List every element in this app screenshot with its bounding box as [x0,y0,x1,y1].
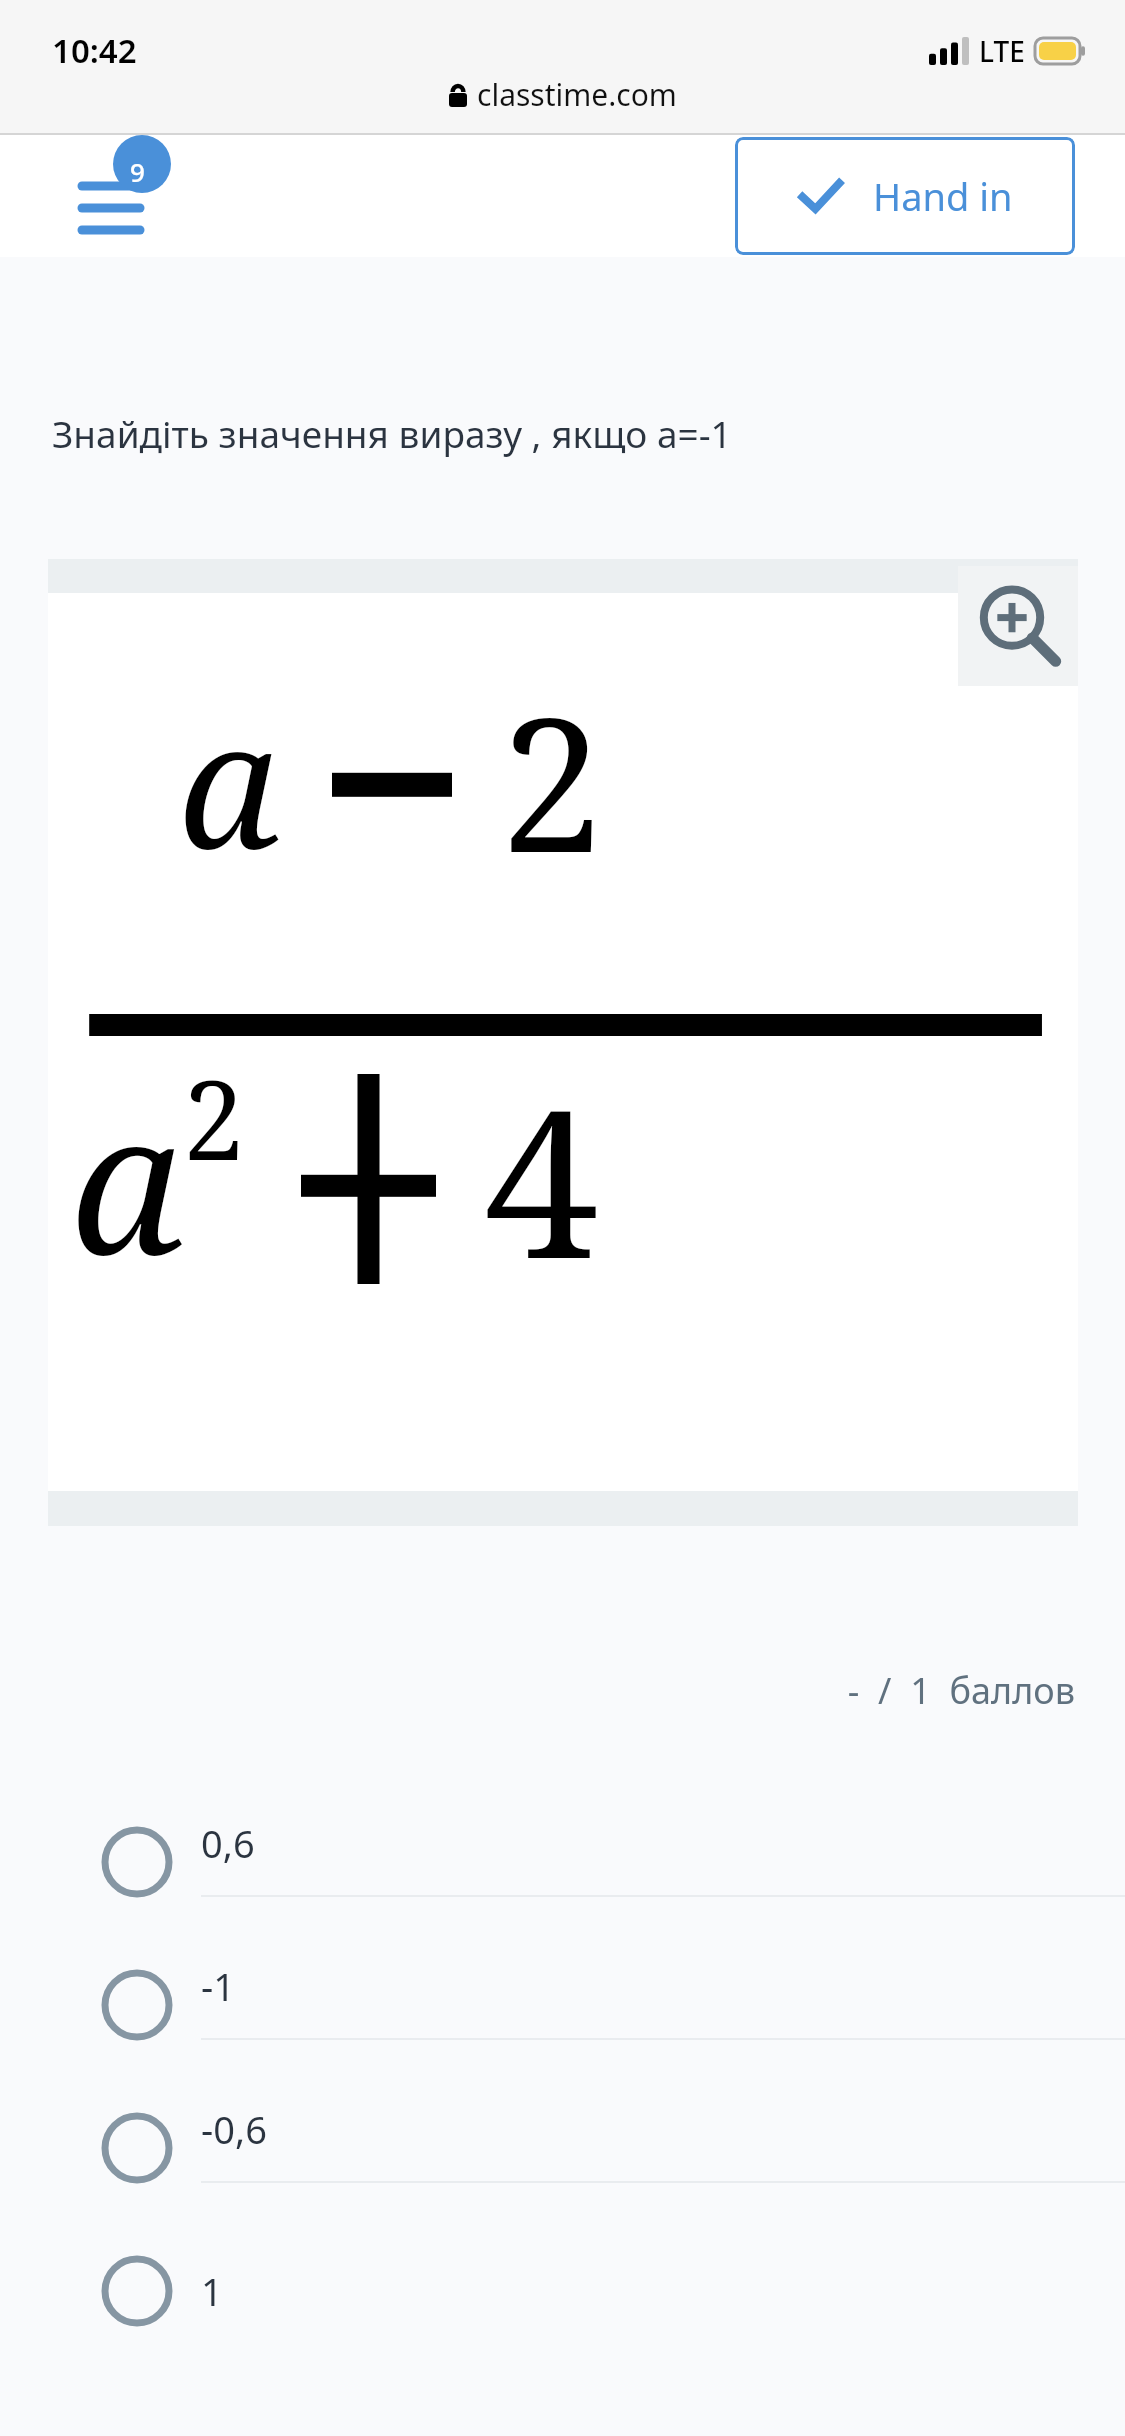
staticText: 4 [484,1039,599,1318]
staticText: a [70,1046,183,1312]
button[interactable]: -1 [0,1933,1125,2076]
staticText: 2 [183,1042,245,1192]
staticText: Знайдіть значення виразу , якщо а=-1 [52,408,732,458]
staticText: 9 [130,154,145,189]
button[interactable]: Zoom image [958,566,1078,686]
button[interactable]: -0,6 [0,2076,1125,2219]
button[interactable]: Menu, 9 questions [52,146,172,246]
staticText: classtime.com [477,74,677,115]
staticText: - / 1 баллов [0,1666,1075,1715]
button[interactable]: Hand in [735,137,1075,255]
staticText: -1 [201,1960,235,2012]
staticText: 1 [201,2265,223,2317]
button[interactable]: 1 [0,2219,1125,2362]
staticText: a [178,661,280,899]
staticText: LTE [979,32,1025,70]
staticText: 2 [500,654,604,906]
staticText: 0,6 [201,1817,255,1869]
button[interactable]: 0,6 [0,1790,1125,1933]
staticText: 10:42 [52,28,137,73]
staticText: Hand in [873,170,1013,222]
staticText: -0,6 [201,2103,267,2155]
